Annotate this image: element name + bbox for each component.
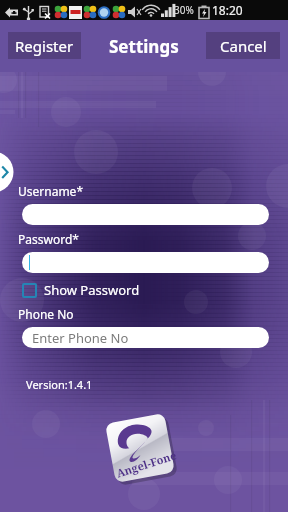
staticText: 18:20 (212, 2, 243, 18)
staticText: Register (15, 36, 74, 56)
button[interactable]: Register (8, 32, 81, 59)
button[interactable]: Open drawer (0, 151, 14, 193)
staticText: Show Password (44, 281, 140, 299)
staticText: Cancel (220, 36, 267, 56)
staticText: Enter Phone No (32, 329, 129, 347)
staticText: Phone No (18, 306, 74, 322)
staticText: Username* (18, 183, 83, 199)
staticText: Password* (18, 231, 79, 247)
staticText: Version:1.4.1 (26, 377, 93, 392)
staticText: Settings (109, 35, 179, 58)
button[interactable]: Show Password (22, 281, 140, 299)
staticText: 30% (174, 3, 194, 17)
button[interactable] (22, 204, 269, 225)
button[interactable] (22, 252, 269, 273)
button[interactable]: Cancel (206, 32, 280, 59)
button[interactable]: Enter Phone No (22, 327, 269, 348)
